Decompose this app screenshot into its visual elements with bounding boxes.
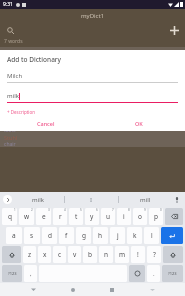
button[interactable]: p xyxy=(149,208,163,225)
staticText: ?123 xyxy=(168,271,177,276)
button[interactable]: Key xyxy=(2,265,22,282)
button[interactable]: l xyxy=(144,227,159,244)
button[interactable]: s xyxy=(24,227,40,244)
staticText: Milch xyxy=(7,72,23,80)
button[interactable]: Stuhl xyxy=(0,133,185,147)
staticText: , xyxy=(30,270,32,278)
staticText: u xyxy=(106,212,111,221)
button[interactable]: v xyxy=(68,246,81,263)
button[interactable]: n xyxy=(99,246,113,263)
button[interactable]: r xyxy=(53,208,67,225)
button[interactable]: i xyxy=(117,208,131,225)
staticText: l xyxy=(151,231,153,240)
button[interactable]: m xyxy=(115,246,129,263)
button[interactable]: + Description xyxy=(7,109,35,115)
staticText: h xyxy=(98,231,103,240)
button[interactable]: Expand suggestions xyxy=(3,195,12,204)
button[interactable]: j xyxy=(110,227,125,244)
button[interactable]: Recents xyxy=(105,283,119,296)
staticText: 9 xyxy=(144,208,146,212)
staticText: y xyxy=(90,212,94,221)
button[interactable]: o xyxy=(133,208,147,225)
staticText: ?123 xyxy=(8,271,17,276)
staticText: 2 xyxy=(31,208,33,212)
button[interactable]: Cancel xyxy=(0,115,92,131)
staticText: 6 xyxy=(96,208,98,212)
staticText: b xyxy=(88,250,92,259)
button[interactable]: Key xyxy=(129,265,145,282)
button[interactable]: mill xyxy=(119,192,172,207)
button[interactable]: e xyxy=(36,208,51,225)
staticText: 7 xyxy=(112,208,114,212)
button[interactable]: g xyxy=(76,227,91,244)
button[interactable]: z xyxy=(23,246,36,263)
button[interactable]: milk xyxy=(12,192,64,207)
button[interactable]: Key xyxy=(165,208,183,225)
button[interactable]: Messer xyxy=(0,47,185,61)
staticText: myDict1 xyxy=(81,12,105,20)
button[interactable]: Search xyxy=(4,24,16,36)
staticText: v xyxy=(73,250,77,259)
staticText: milk xyxy=(32,196,44,204)
staticText: I xyxy=(90,196,93,204)
button[interactable]: h xyxy=(93,227,108,244)
staticText: 0 xyxy=(160,208,162,212)
button[interactable]: , xyxy=(24,265,37,282)
button[interactable]: Home xyxy=(66,283,80,296)
staticText: g xyxy=(82,231,86,240)
staticText: 4 xyxy=(64,208,66,212)
staticText: n xyxy=(104,250,109,259)
button[interactable]: y xyxy=(85,208,99,225)
staticText: mill xyxy=(140,196,151,204)
button[interactable]: Key xyxy=(162,265,183,282)
staticText: j xyxy=(117,231,119,240)
button[interactable]: OK xyxy=(92,115,185,131)
staticText: r xyxy=(59,212,62,221)
staticText: c xyxy=(58,250,62,259)
button[interactable]: b xyxy=(83,246,97,263)
staticText: 7 words xyxy=(4,38,23,45)
button[interactable]: Tisch xyxy=(0,119,185,133)
staticText: chair xyxy=(4,141,16,147)
staticText: f xyxy=(65,231,68,240)
staticText: Cancel xyxy=(37,120,55,127)
button[interactable]: w xyxy=(19,208,34,225)
button[interactable]: Hide keyboard xyxy=(145,283,159,296)
staticText: a xyxy=(12,231,16,240)
button[interactable]: q xyxy=(2,208,17,225)
button[interactable]: x xyxy=(38,246,51,263)
button[interactable]: Back xyxy=(26,283,40,296)
button[interactable]: k xyxy=(127,227,142,244)
button[interactable]: c xyxy=(53,246,66,263)
button[interactable]: Enter xyxy=(161,227,183,244)
button[interactable]: Key xyxy=(163,246,183,263)
button[interactable] xyxy=(0,61,185,119)
staticText: p xyxy=(154,212,158,221)
staticText: t xyxy=(75,212,78,221)
button[interactable]: Key xyxy=(2,246,21,263)
button[interactable]: Voice input xyxy=(172,195,182,205)
staticText: + Description xyxy=(7,109,35,115)
button[interactable]: ? xyxy=(147,246,161,263)
staticText: 1 xyxy=(14,208,16,212)
button[interactable]: a xyxy=(6,227,22,244)
button[interactable]: ! xyxy=(131,246,145,263)
staticText: k xyxy=(133,231,137,240)
staticText: e xyxy=(42,212,46,221)
staticText: x xyxy=(43,250,47,259)
staticText: ! xyxy=(137,250,139,259)
button[interactable]: t xyxy=(69,208,83,225)
button[interactable]: I xyxy=(65,192,118,207)
button[interactable]: . xyxy=(147,265,160,282)
staticText: 5 xyxy=(80,208,82,212)
staticText: 8 xyxy=(128,208,130,212)
button[interactable]: u xyxy=(101,208,115,225)
button[interactable]: Add word xyxy=(167,23,181,37)
staticText: w xyxy=(24,212,30,221)
staticText: Add to Dictionary xyxy=(7,55,62,64)
button[interactable]: f xyxy=(59,227,74,244)
staticText: Stuhl xyxy=(4,134,18,141)
button[interactable]: d xyxy=(42,227,57,244)
staticText: OK xyxy=(135,120,143,127)
